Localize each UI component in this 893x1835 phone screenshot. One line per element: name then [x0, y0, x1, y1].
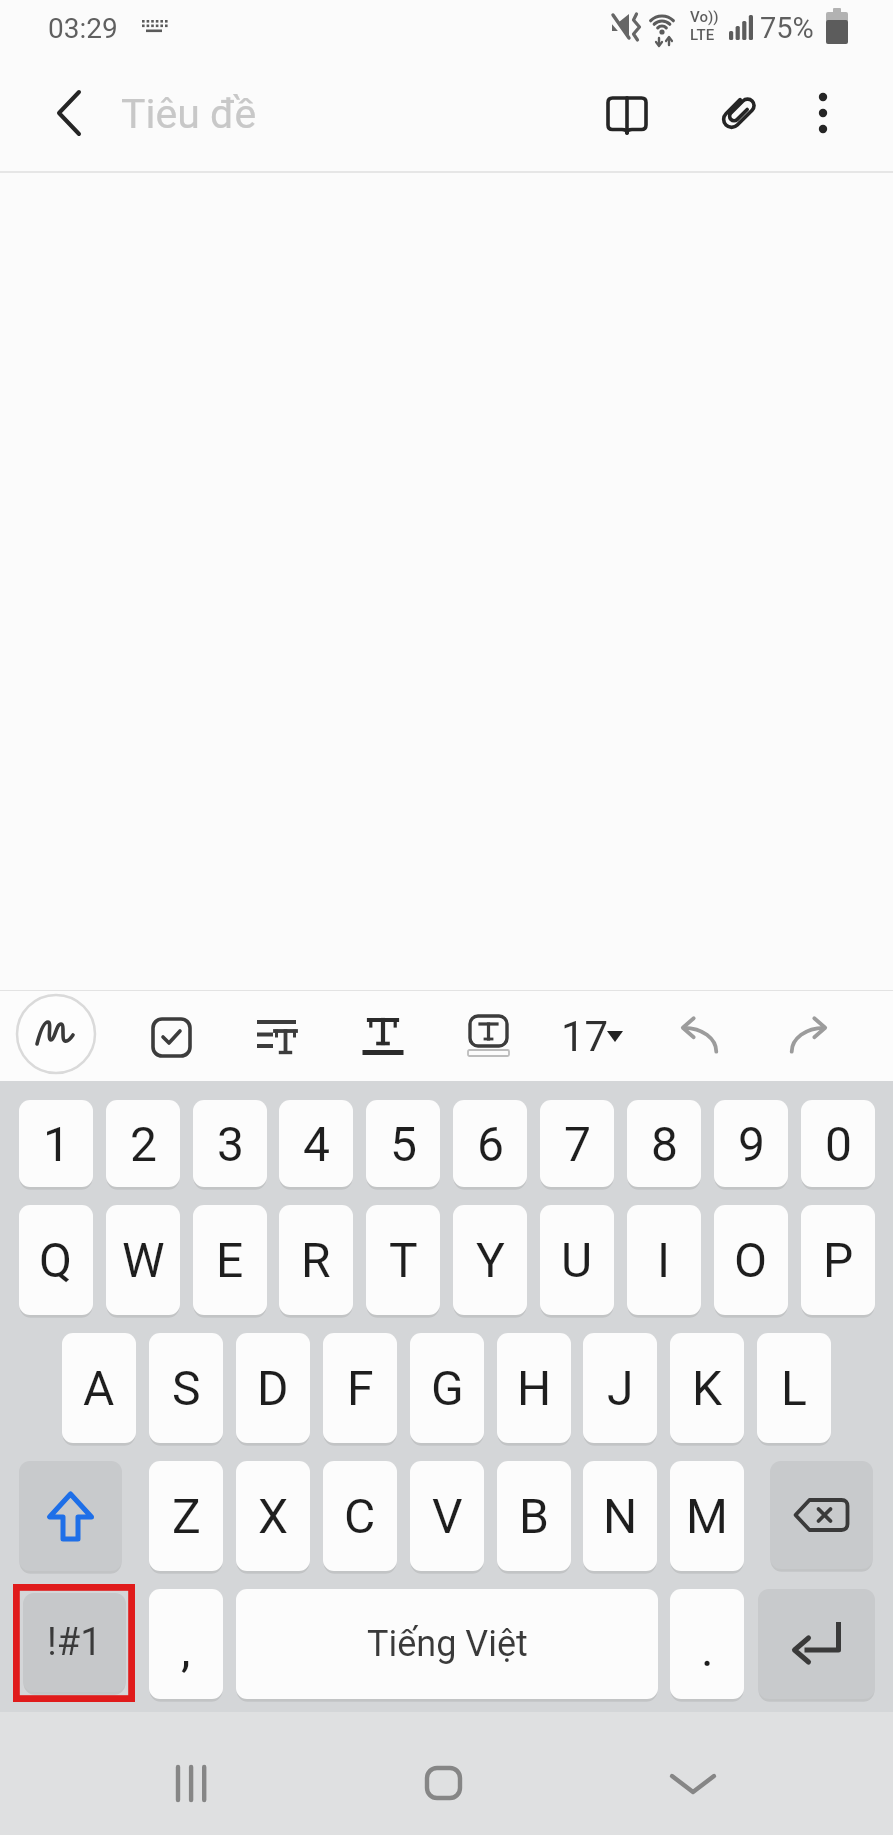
button[interactable]: F — [323, 1333, 397, 1443]
button[interactable]: Y — [453, 1205, 527, 1315]
button[interactable]: H — [497, 1333, 571, 1443]
button[interactable]: Z — [149, 1461, 223, 1571]
staticText: B — [519, 1488, 549, 1544]
staticText: R — [301, 1232, 331, 1288]
staticText: D — [257, 1360, 289, 1416]
staticText: Tiêu đề — [121, 90, 257, 138]
button[interactable] — [19, 1461, 122, 1571]
button[interactable]: A — [62, 1333, 136, 1443]
button[interactable] — [660, 1750, 726, 1816]
staticText: S — [172, 1360, 201, 1416]
staticText: F — [347, 1360, 374, 1416]
staticText: 03:29 — [48, 12, 118, 45]
staticText: 7 — [564, 1116, 591, 1172]
button[interactable]: 0 — [801, 1100, 875, 1187]
button[interactable]: 7 — [540, 1100, 614, 1187]
button[interactable]: D — [236, 1333, 310, 1443]
button[interactable]: C — [323, 1461, 397, 1571]
staticText: T — [389, 1232, 418, 1288]
button[interactable] — [16, 994, 96, 1074]
staticText: Tiếng Việt — [367, 1623, 528, 1665]
button[interactable]: 1 — [19, 1100, 93, 1187]
staticText: L — [781, 1360, 807, 1416]
button[interactable]: 2 — [106, 1100, 180, 1187]
button[interactable] — [665, 1000, 735, 1070]
staticText: G — [431, 1360, 464, 1416]
staticText: 0 — [825, 1116, 852, 1172]
button[interactable]: J — [583, 1333, 657, 1443]
button[interactable]: E — [193, 1205, 267, 1315]
button[interactable]: W — [106, 1205, 180, 1315]
staticText: P — [823, 1232, 854, 1288]
staticText: 17 — [561, 1012, 609, 1061]
staticText: 4 — [303, 1116, 330, 1172]
button[interactable]: , — [149, 1589, 223, 1699]
button[interactable]: K — [670, 1333, 744, 1443]
button[interactable] — [356, 1010, 411, 1065]
staticText: W — [122, 1232, 165, 1288]
button[interactable] — [800, 84, 846, 142]
button[interactable]: S — [149, 1333, 223, 1443]
button[interactable]: 4 — [279, 1100, 353, 1187]
button[interactable]: Tiếng Việt — [236, 1589, 658, 1699]
staticText: X — [258, 1488, 289, 1544]
button[interactable] — [249, 1010, 304, 1065]
staticText: M — [686, 1488, 728, 1544]
staticText: 6 — [477, 1116, 504, 1172]
button[interactable] — [758, 1589, 875, 1699]
staticText: LTE — [690, 26, 715, 44]
staticText: H — [517, 1360, 552, 1416]
staticText: 2 — [130, 1116, 157, 1172]
button[interactable]: M — [670, 1461, 744, 1571]
button[interactable]: B — [497, 1461, 571, 1571]
staticText: E — [216, 1232, 244, 1288]
button[interactable]: G — [410, 1333, 484, 1443]
button[interactable]: !#1 — [23, 1593, 126, 1692]
staticText: Vo)) — [690, 8, 719, 26]
button[interactable]: T — [366, 1205, 440, 1315]
button[interactable] — [762, 1000, 832, 1070]
button[interactable] — [160, 1750, 226, 1816]
button[interactable]: L — [757, 1333, 831, 1443]
staticText: !#1 — [47, 1620, 102, 1665]
button[interactable] — [40, 84, 98, 142]
button[interactable]: Q — [19, 1205, 93, 1315]
button[interactable]: P — [801, 1205, 875, 1315]
staticText: O — [734, 1232, 768, 1288]
button[interactable]: 17 — [558, 1008, 633, 1064]
button[interactable] — [770, 1461, 873, 1569]
button[interactable]: R — [279, 1205, 353, 1315]
button[interactable]: 8 — [627, 1100, 701, 1187]
button[interactable]: 3 — [193, 1100, 267, 1187]
staticText: Q — [39, 1232, 73, 1288]
button[interactable]: O — [714, 1205, 788, 1315]
staticText: 1 — [43, 1116, 70, 1172]
staticText: Y — [476, 1232, 505, 1288]
button[interactable]: N — [583, 1461, 657, 1571]
staticText: V — [432, 1488, 463, 1544]
staticText: K — [692, 1360, 723, 1416]
button[interactable]: . — [670, 1589, 744, 1699]
button[interactable]: 5 — [366, 1100, 440, 1187]
button[interactable]: U — [540, 1205, 614, 1315]
button[interactable] — [410, 1750, 476, 1816]
staticText: C — [344, 1488, 376, 1544]
button[interactable]: 9 — [714, 1100, 788, 1187]
button[interactable]: X — [236, 1461, 310, 1571]
staticText: J — [607, 1360, 634, 1416]
staticText: 3 — [217, 1116, 244, 1172]
staticText: 8 — [651, 1116, 678, 1172]
staticText: U — [561, 1232, 593, 1288]
button[interactable]: V — [410, 1461, 484, 1571]
staticText: Z — [172, 1488, 201, 1544]
staticText: A — [83, 1360, 115, 1416]
staticText: N — [603, 1488, 638, 1544]
button[interactable] — [709, 84, 767, 142]
button[interactable] — [461, 1010, 516, 1065]
button[interactable] — [144, 1010, 199, 1065]
staticText: 5 — [390, 1116, 417, 1172]
button[interactable] — [598, 84, 656, 142]
button[interactable]: 6 — [453, 1100, 527, 1187]
staticText: . — [701, 1621, 714, 1677]
button[interactable]: I — [627, 1205, 701, 1315]
